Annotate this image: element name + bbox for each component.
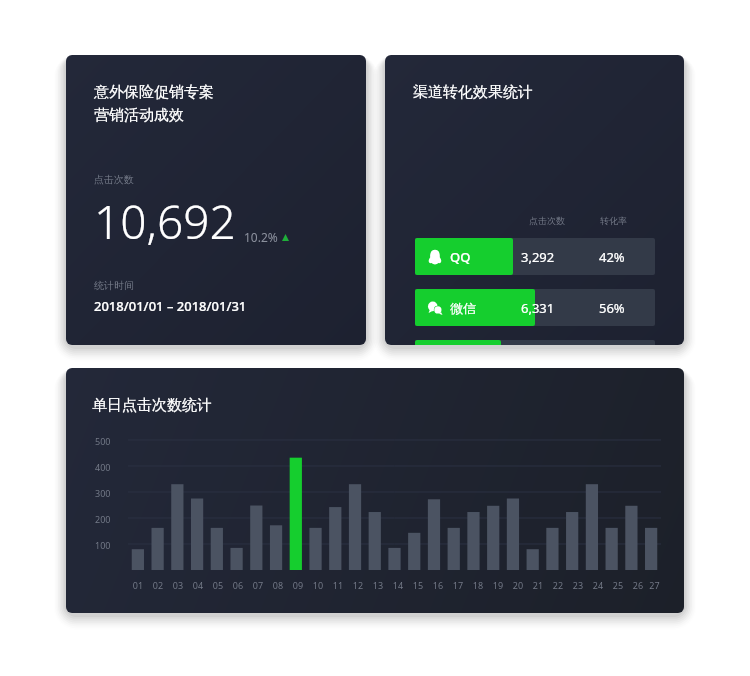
staticText: 21 [528, 579, 548, 591]
staticText: 点击次数 [94, 173, 134, 186]
staticText: 转化率 [600, 215, 627, 226]
staticText: 14 [388, 579, 408, 591]
staticText: 08 [268, 579, 288, 591]
staticText: 22 [548, 579, 568, 591]
staticText: 18 [468, 579, 488, 591]
staticText: 12 [348, 579, 368, 591]
staticText: 10.2% [244, 229, 278, 245]
staticText: QQ [450, 248, 471, 266]
staticText: 10 [308, 579, 328, 591]
staticText: 微信 [450, 300, 476, 316]
staticText: 42% [599, 248, 637, 266]
staticText: 56% [599, 299, 637, 317]
staticText: 100 [95, 539, 111, 551]
staticText: 3,292 [521, 248, 571, 266]
staticText: 16 [428, 579, 448, 591]
staticText: 500 [95, 435, 111, 447]
staticText: 统计时间 [94, 279, 134, 292]
staticText: 400 [95, 461, 111, 473]
staticText: 意外保险促销专案 [94, 83, 214, 102]
staticText: 6,331 [521, 299, 571, 317]
staticText: 营销活动成效 [94, 106, 184, 125]
staticText: 04 [188, 579, 208, 591]
button[interactable]: 公众号 [415, 340, 655, 345]
staticText: 19 [488, 579, 508, 591]
staticText: 2018/01/01 – 2018/01/31 [94, 297, 247, 315]
button[interactable]: QQ [415, 238, 655, 275]
button[interactable]: 单日点击次数统计 [66, 368, 684, 613]
staticText: 25 [608, 579, 628, 591]
staticText: 03 [168, 579, 188, 591]
staticText: 01 [128, 579, 148, 591]
staticText: 06 [228, 579, 248, 591]
staticText: 300 [95, 487, 111, 499]
staticText: 23 [568, 579, 588, 591]
staticText: 17 [448, 579, 468, 591]
staticText: 13 [368, 579, 388, 591]
staticText: 27 [648, 579, 661, 591]
button[interactable]: 意外保险促销专案 [66, 55, 366, 345]
staticText: 11 [328, 579, 348, 591]
staticText: 点击次数 [529, 215, 565, 226]
staticText: 200 [95, 513, 111, 525]
staticText: 渠道转化效果统计 [413, 83, 533, 102]
button[interactable]: 渠道转化效果统计 [385, 55, 684, 345]
staticText: 02 [148, 579, 168, 591]
staticText: 07 [248, 579, 268, 591]
staticText: 09 [288, 579, 308, 591]
staticText: 15 [408, 579, 428, 591]
staticText: 单日点击次数统计 [92, 396, 212, 415]
staticText: 20 [508, 579, 528, 591]
staticText: 24 [588, 579, 608, 591]
staticText: 26 [628, 579, 648, 591]
staticText: 05 [208, 579, 228, 591]
staticText: 10,692 [94, 190, 236, 253]
button[interactable]: 微信 [415, 289, 655, 326]
